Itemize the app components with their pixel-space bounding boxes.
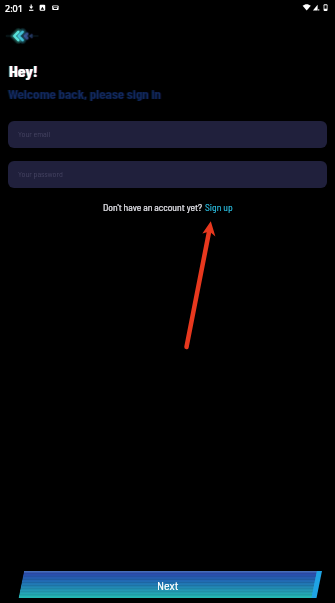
staticText: Welcome back, please sign in [7, 86, 160, 102]
staticText: Hey! [10, 61, 39, 80]
button[interactable]: Your email [8, 121, 327, 148]
staticText: Your password [18, 169, 63, 179]
button[interactable]: Next [0, 571, 335, 599]
staticText: Hey! [8, 61, 37, 80]
button[interactable]: Your password [8, 161, 327, 188]
button[interactable]: Back [6, 24, 38, 48]
staticText: Hey! [9, 61, 38, 80]
staticText: Next [157, 578, 179, 592]
staticText: Your email [18, 129, 51, 139]
staticText: Sign up [205, 201, 233, 213]
staticText: Don't have an account yet? [103, 201, 205, 213]
staticText: 2:01 [5, 2, 23, 14]
staticText: Welcome back, please sign in [8, 86, 161, 102]
staticText: Welcome back, please sign in [9, 86, 162, 102]
button[interactable]: Sign up [205, 201, 233, 213]
